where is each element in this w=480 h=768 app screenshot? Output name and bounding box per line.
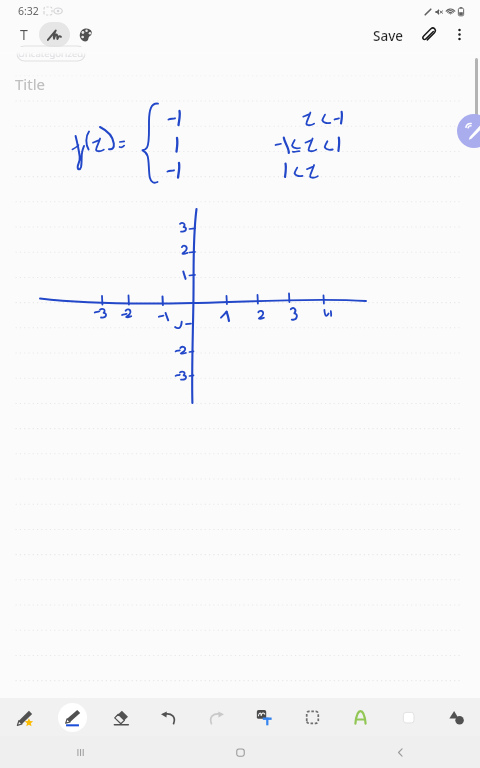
button[interactable]: More options <box>444 22 474 47</box>
button[interactable]: Back <box>320 736 480 768</box>
button[interactable]: Palette <box>70 22 101 47</box>
button[interactable]: Text <box>336 698 384 736</box>
button[interactable]: Air command <box>457 114 480 148</box>
button[interactable]: Select <box>288 698 336 736</box>
button[interactable]: Text mode <box>8 22 39 47</box>
button[interactable]: Redo <box>192 698 240 736</box>
button[interactable]: Undo <box>144 698 192 736</box>
button[interactable]: Category <box>17 46 85 61</box>
staticText: T <box>20 25 28 44</box>
button[interactable]: Pen <box>48 698 96 736</box>
button[interactable]: Home <box>160 736 320 768</box>
button[interactable]: Page background <box>384 698 432 736</box>
button[interactable]: Handwriting mode <box>39 22 70 47</box>
button[interactable]: Recents <box>0 736 160 768</box>
staticText: Save <box>373 27 404 42</box>
button[interactable]: Save <box>365 22 412 47</box>
button[interactable]: Eraser <box>96 698 144 736</box>
button[interactable]: Attach <box>412 22 444 47</box>
staticText: Title <box>15 74 45 94</box>
staticText: Uncategorized <box>18 47 84 60</box>
button[interactable]: Convert to text <box>240 698 288 736</box>
staticText: 6:32 <box>18 4 39 18</box>
button[interactable]: Favorite pen <box>0 698 48 736</box>
button[interactable]: Shapes <box>432 698 480 736</box>
